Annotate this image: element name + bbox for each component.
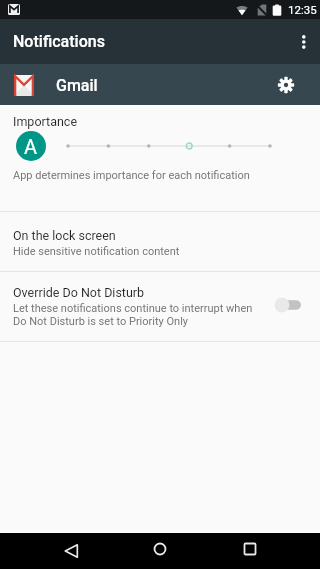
staticText: Importance: [13, 114, 78, 129]
staticText: Override Do Not Disturb: [13, 285, 145, 300]
staticText: 12:35: [288, 3, 317, 16]
staticText: Hide sensitive notification content: [13, 245, 180, 258]
button[interactable]: Override Do Not Disturb: [0, 272, 320, 341]
button[interactable]: On the lock screen: [0, 212, 320, 271]
button[interactable]: Importance: [0, 106, 320, 211]
button[interactable]: Recent apps: [220, 533, 280, 569]
button[interactable]: Settings: [266, 64, 306, 105]
staticText: On the lock screen: [13, 228, 116, 243]
button[interactable]: Override Do Not Disturb toggle: [274, 295, 304, 315]
staticText: Do Not Disturb is set to Priority Only: [13, 315, 189, 328]
staticText: A: [24, 135, 38, 158]
button[interactable]: Gmail: [0, 64, 320, 105]
button[interactable]: Home: [130, 533, 190, 569]
staticText: Let these notifications continue to inte…: [13, 302, 253, 315]
staticText: App determines importance for each notif…: [13, 169, 250, 182]
staticText: Gmail: [56, 76, 98, 95]
button[interactable]: Back: [40, 533, 100, 569]
staticText: Notifications: [13, 32, 105, 51]
button[interactable]: More options: [282, 19, 320, 64]
